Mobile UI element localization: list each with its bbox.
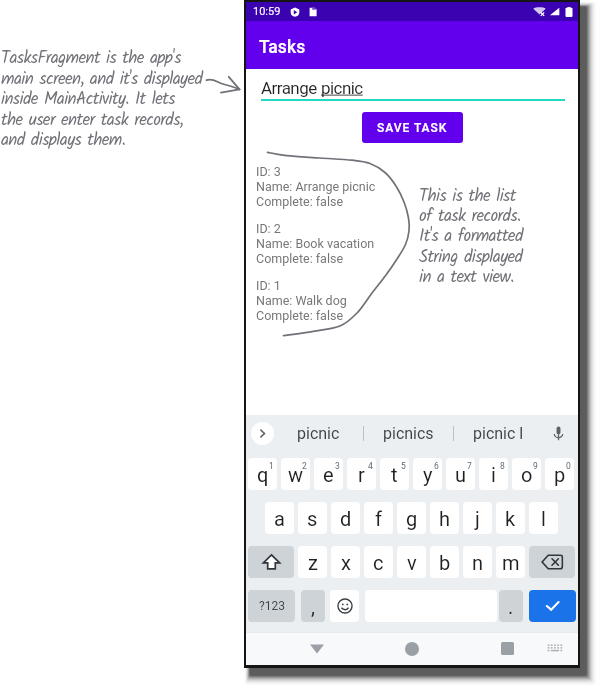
staticText: It's a formatted <box>419 223 523 250</box>
staticText: 10:59 <box>253 5 281 18</box>
button[interactable]: a <box>265 502 294 534</box>
button[interactable]: n <box>463 546 492 578</box>
staticText: main screen, and it's displayed <box>1 66 203 93</box>
staticText: ?123 <box>259 599 285 613</box>
button[interactable]: f <box>364 502 393 534</box>
staticText: c <box>373 551 384 574</box>
staticText: Complete: false <box>256 194 344 209</box>
button[interactable]: w <box>281 458 310 490</box>
staticText: picnic <box>297 424 340 443</box>
staticText: y <box>423 463 433 486</box>
staticText: Name: Walk dog <box>256 293 347 308</box>
staticText: SAVE TASK <box>377 121 448 135</box>
staticText: This is the list <box>419 183 516 210</box>
button[interactable]: c <box>364 546 393 578</box>
staticText: u <box>455 463 467 486</box>
button[interactable]: Backspace <box>529 546 575 578</box>
button[interactable]: picnics <box>364 415 453 452</box>
button[interactable]: Back <box>295 636 339 661</box>
staticText: 7 <box>467 461 472 471</box>
button[interactable]: u <box>446 458 475 490</box>
button[interactable]: l <box>529 502 558 534</box>
staticText: . <box>508 595 514 618</box>
button[interactable]: q <box>248 458 277 490</box>
button[interactable]: y <box>413 458 442 490</box>
staticText: Tasks <box>259 37 306 58</box>
staticText: i <box>491 463 496 486</box>
staticText: 2 <box>302 461 307 471</box>
button[interactable]: m <box>496 546 525 578</box>
button[interactable]: k <box>496 502 525 534</box>
button[interactable]: Enter <box>529 590 576 622</box>
staticText: 5 <box>401 461 406 471</box>
staticText: picnics <box>383 424 434 443</box>
button[interactable]: SAVE TASK <box>362 112 463 143</box>
button[interactable]: ?123 <box>248 590 295 622</box>
button[interactable]: s <box>298 502 327 534</box>
button[interactable]: picnic <box>274 415 363 452</box>
button[interactable]: picnic l <box>454 415 543 452</box>
staticText: the user enter task records, <box>1 107 184 134</box>
staticText: e <box>323 463 334 486</box>
staticText: Complete: false <box>256 308 344 323</box>
button[interactable]: b <box>430 546 459 578</box>
staticText: 1 <box>269 461 274 471</box>
button[interactable]: j <box>463 502 492 534</box>
button[interactable]: i <box>479 458 508 490</box>
button[interactable]: h <box>430 502 459 534</box>
staticText: ID: 2 <box>256 221 281 236</box>
staticText: TasksFragment is the app's <box>1 45 181 72</box>
staticText: b <box>439 551 451 574</box>
button[interactable]: . <box>499 590 523 622</box>
staticText: ID: 3 <box>256 164 281 179</box>
staticText: n <box>472 551 484 574</box>
button[interactable]: e <box>314 458 343 490</box>
staticText: Arrange <box>261 78 321 98</box>
staticText: d <box>340 507 352 530</box>
button[interactable]: Switch keyboard <box>540 636 570 661</box>
staticText: t <box>391 463 398 486</box>
staticText: r <box>358 463 365 486</box>
staticText: g <box>406 507 418 530</box>
button[interactable]: Recents <box>485 636 529 661</box>
button[interactable]: Shift <box>248 546 294 578</box>
staticText: p <box>554 463 566 486</box>
button[interactable]: r <box>347 458 376 490</box>
staticText: j <box>475 507 480 530</box>
staticText: 0 <box>566 461 571 471</box>
button[interactable]: Tasks <box>246 21 578 69</box>
button[interactable]: Emoji <box>330 590 359 622</box>
staticText: v <box>407 551 417 574</box>
staticText: ID: 1 <box>256 278 281 293</box>
staticText: h <box>439 507 451 530</box>
staticText: w <box>288 463 304 486</box>
button[interactable]: x <box>331 546 360 578</box>
button[interactable]: g <box>397 502 426 534</box>
button[interactable]: p <box>545 458 574 490</box>
button[interactable]: v <box>397 546 426 578</box>
button[interactable]: Home <box>390 636 434 661</box>
staticText: 4 <box>368 461 373 471</box>
button[interactable]: t <box>380 458 409 490</box>
button[interactable]: z <box>298 546 327 578</box>
staticText: of task records. <box>419 203 521 230</box>
staticText: in a text view. <box>419 264 514 291</box>
staticText: q <box>257 463 269 486</box>
staticText: 6 <box>434 461 439 471</box>
staticText: Name: Book vacation <box>256 236 375 251</box>
button[interactable]: , <box>301 590 325 622</box>
staticText: picnic l <box>473 424 524 443</box>
staticText: s <box>307 507 318 530</box>
staticText: inside MainActivity. It lets <box>1 86 175 113</box>
staticText: 8 <box>500 461 505 471</box>
button[interactable]: o <box>512 458 541 490</box>
staticText: x <box>341 551 351 574</box>
staticText: f <box>375 507 382 530</box>
staticText: a <box>274 507 285 530</box>
staticText: z <box>308 551 318 574</box>
button[interactable]: d <box>331 502 360 534</box>
button[interactable]: Expand suggestions <box>251 422 274 445</box>
button[interactable]: Voice input <box>543 415 573 452</box>
staticText: , <box>311 595 315 618</box>
